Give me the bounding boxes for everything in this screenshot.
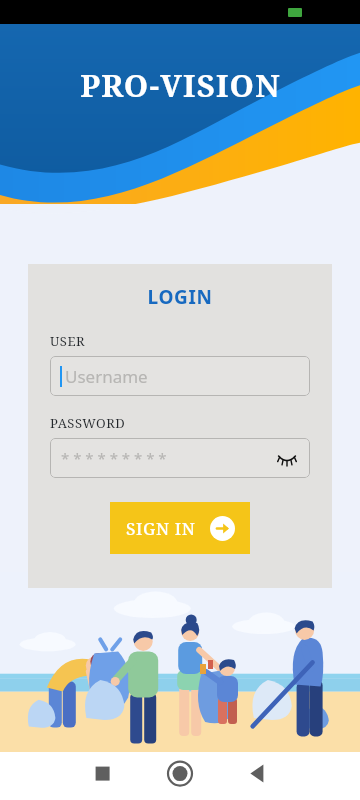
button[interactable]: * * * * * * * * * xyxy=(50,438,310,478)
staticText: PASSWORD xyxy=(50,414,126,432)
staticText: SIGN IN xyxy=(126,517,196,540)
staticText: PRO-VISION xyxy=(80,64,281,106)
button[interactable]: Username xyxy=(50,356,310,396)
staticText: * * * * * * * * * xyxy=(61,448,167,468)
button[interactable]: SIGN IN xyxy=(110,502,250,554)
staticText: Username xyxy=(65,365,148,388)
staticText: USER xyxy=(50,332,86,350)
staticText: LOGIN xyxy=(50,284,310,310)
button[interactable]: Show password xyxy=(275,446,299,470)
